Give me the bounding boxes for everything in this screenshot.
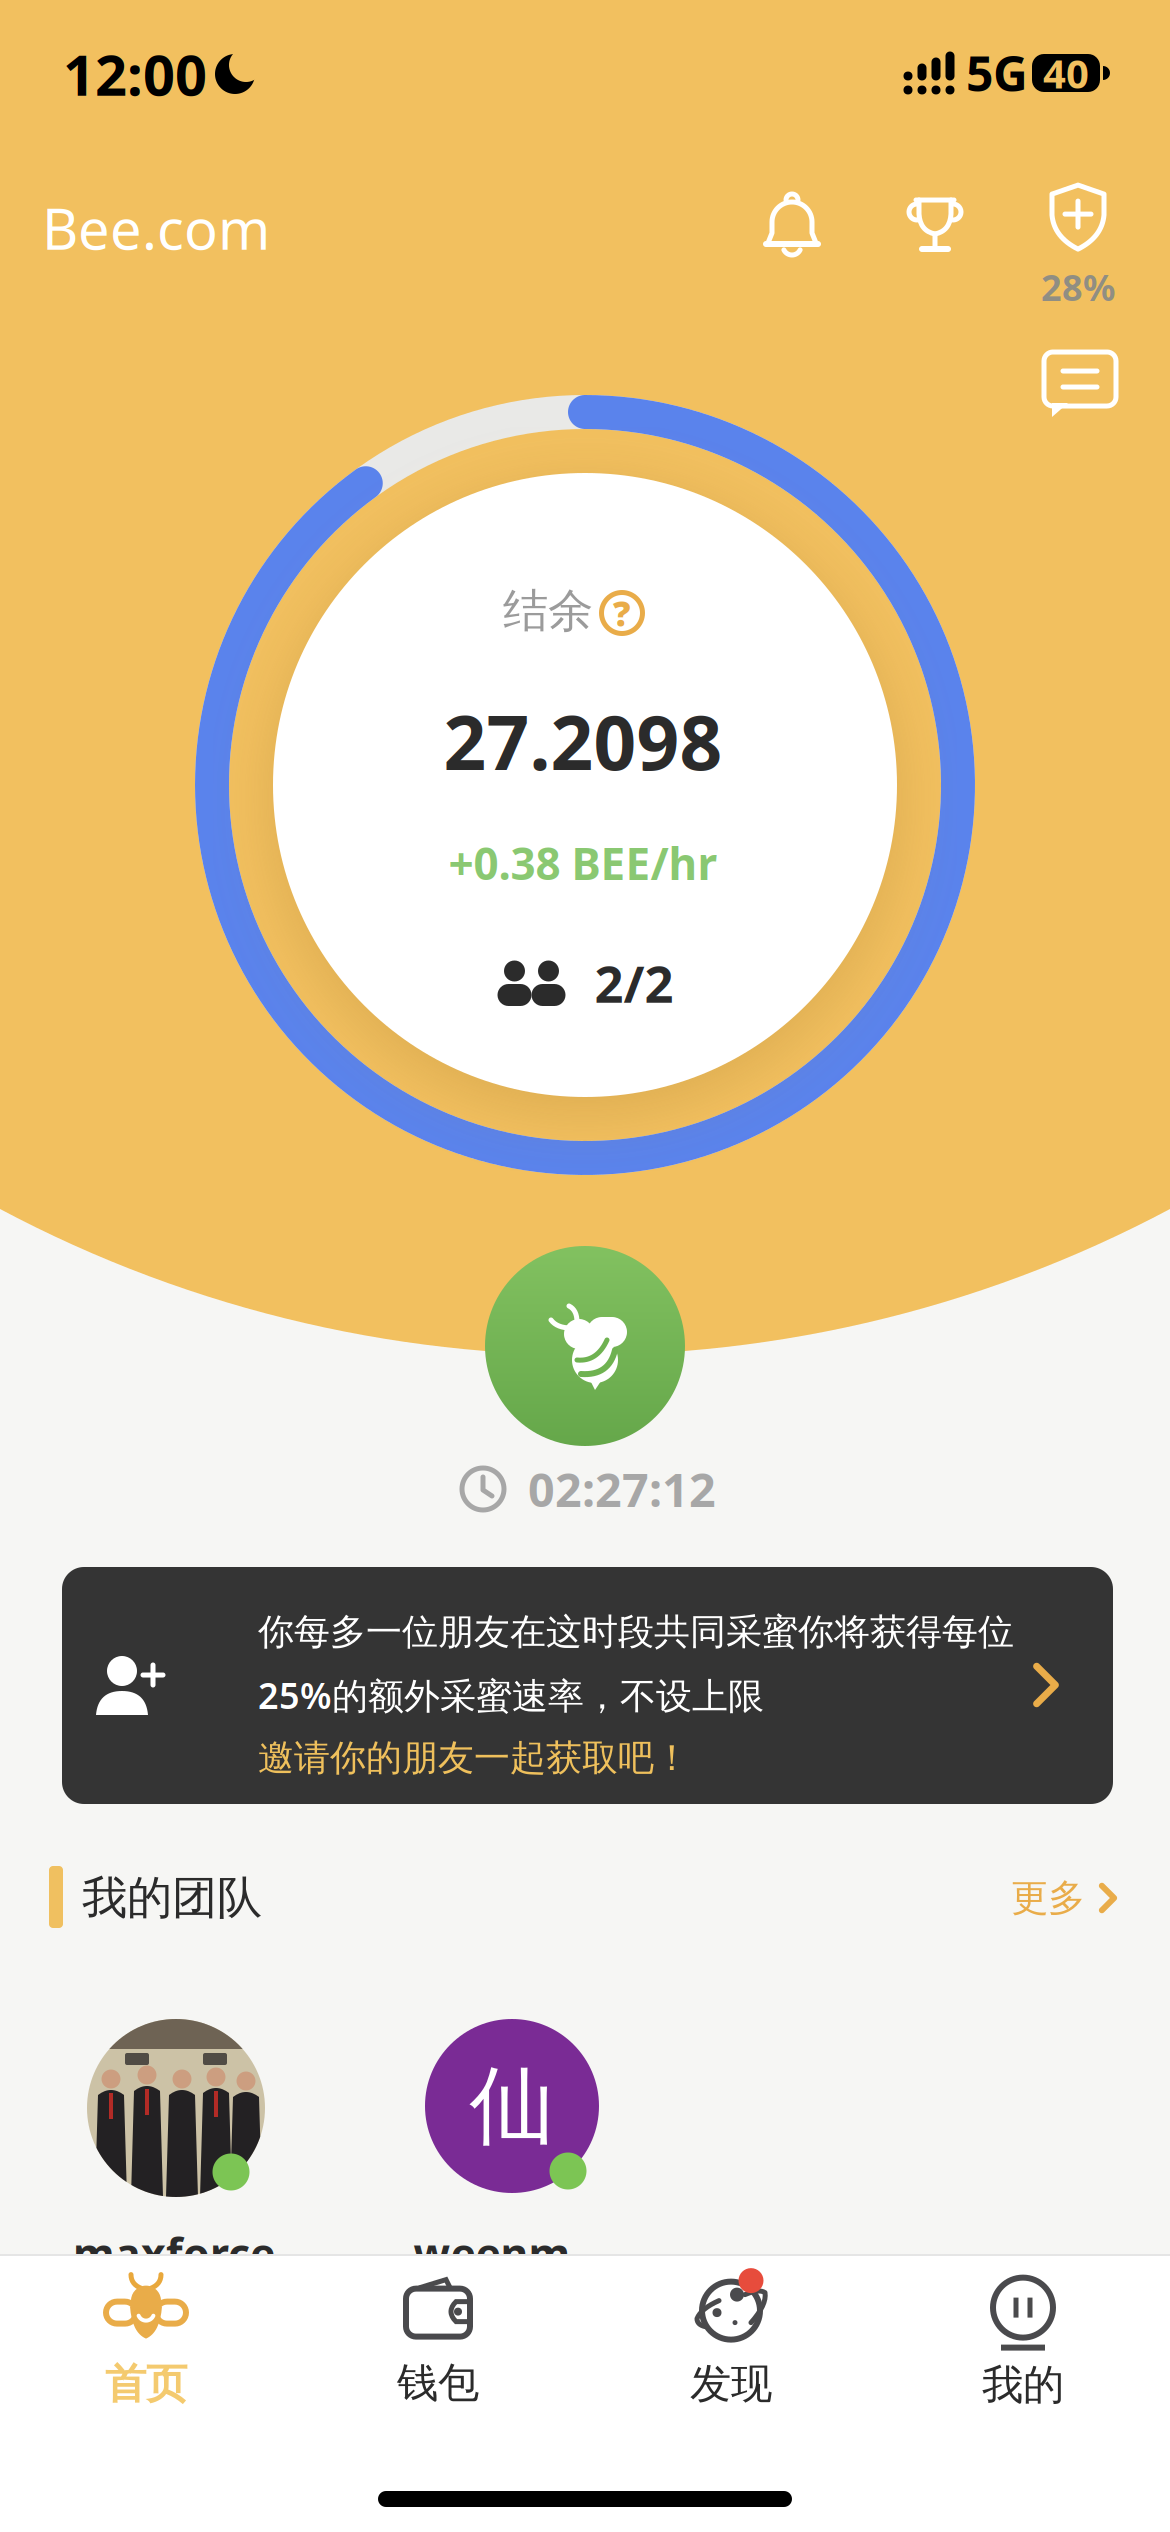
staticText: 我的	[982, 2360, 1064, 2410]
staticText: 28%	[1041, 263, 1115, 311]
staticText: 你每多一位朋友在这时段共同采蜜你将获得每位	[258, 1610, 1014, 1654]
staticText: 27.2098	[443, 691, 722, 791]
staticText: 25%的额外采蜜速率，不设上限	[258, 1671, 764, 1719]
button[interactable]: 更多	[1011, 1875, 1125, 1921]
button[interactable]: 消息	[1038, 347, 1122, 421]
staticText: 邀请你的朋友一起获取吧！	[258, 1736, 690, 1780]
button[interactable]: 说明	[599, 590, 645, 636]
button[interactable]: weenm	[425, 2019, 599, 2193]
staticText: 钱包	[397, 2358, 479, 2408]
button[interactable]: 排行榜	[895, 187, 975, 267]
staticText: 02:27:12	[528, 1458, 716, 1520]
button[interactable]: 钱包	[318, 2252, 558, 2432]
button[interactable]: 我的	[903, 2252, 1143, 2432]
staticText: 更多	[1011, 1875, 1085, 1921]
staticText: 12:00	[63, 37, 207, 111]
button[interactable]: 通知	[752, 186, 832, 266]
staticText: 2/2	[594, 949, 673, 1017]
button[interactable]: 首页	[26, 2250, 266, 2430]
staticText: weenm	[413, 2225, 570, 2281]
button[interactable]: 安全等级	[1038, 175, 1118, 311]
staticText: 首页	[105, 2359, 187, 2409]
button[interactable]: 开始采蜜	[485, 1246, 685, 1446]
staticText: +0.38 BEE/hr	[448, 834, 717, 892]
button[interactable]: 你每多一位朋友在这时段共同采蜜你将获得每位	[62, 1567, 1113, 1804]
staticText: 仙	[469, 2054, 554, 2158]
staticText: ?	[613, 590, 631, 636]
staticText: 40	[1043, 46, 1089, 99]
staticText: maxforce	[73, 2225, 275, 2281]
staticText: 5G	[966, 41, 1028, 105]
button[interactable]: 发现	[611, 2250, 851, 2430]
staticText: 发现	[690, 2359, 772, 2409]
staticText: Bee.com	[42, 191, 270, 265]
staticText: 结余	[503, 583, 593, 639]
staticText: 我的团队	[82, 1870, 262, 1926]
button[interactable]: maxforce	[87, 2019, 265, 2197]
